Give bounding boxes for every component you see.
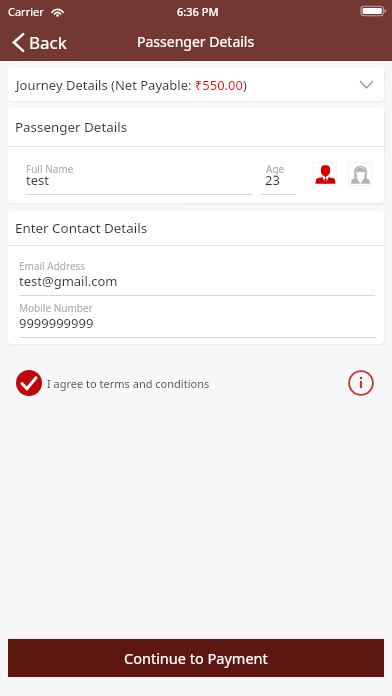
- staticText: test: [26, 171, 49, 189]
- staticText: Full Name: [26, 162, 74, 176]
- button[interactable]: I agree to terms and conditions: [16, 368, 210, 398]
- staticText: Continue to Payment: [124, 648, 268, 668]
- staticText: Carrier: [8, 4, 44, 19]
- button[interactable]: Email Address: [8, 246, 384, 296]
- button[interactable]: Full Name: [8, 147, 252, 203]
- staticText: 23: [265, 171, 280, 189]
- staticText: Passenger Details: [137, 32, 255, 51]
- button[interactable]: Journey Details (Net Payable: ₹550.00): [8, 68, 384, 101]
- staticText: Passenger Details: [15, 118, 128, 136]
- button[interactable]: Back: [0, 27, 75, 57]
- staticText: Age: [266, 162, 285, 176]
- staticText: Email Address: [19, 259, 86, 273]
- staticText: 6:36 PM: [177, 4, 219, 19]
- button[interactable]: Female: [348, 162, 372, 186]
- staticText: Journey Details (Net Payable: ₹550.00): [16, 76, 247, 94]
- staticText: Enter Contact Details: [15, 219, 148, 237]
- button[interactable]: Continue to Payment: [8, 639, 384, 677]
- button[interactable]: Mobile Number: [8, 296, 384, 338]
- staticText: 9999999999: [19, 314, 94, 332]
- staticText: I agree to terms and conditions: [47, 376, 210, 391]
- button[interactable]: Information: [348, 370, 374, 396]
- button[interactable]: Male: [313, 162, 337, 186]
- button[interactable]: Age: [261, 147, 296, 203]
- staticText: Back: [29, 31, 67, 54]
- staticText: Mobile Number: [19, 301, 93, 315]
- staticText: test@gmail.com: [19, 272, 118, 290]
